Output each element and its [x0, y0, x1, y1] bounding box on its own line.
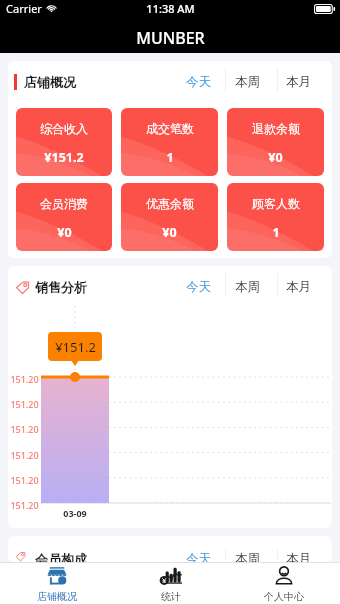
staticText: 11:38 AM [146, 1, 195, 16]
button[interactable]: 综合收入 [16, 108, 112, 176]
staticText: 本周 [235, 551, 260, 562]
staticText: 退款余额 [252, 121, 300, 136]
button[interactable]: 本月 [273, 275, 324, 299]
staticText: 综合收入 [40, 121, 88, 136]
staticText: 1 [272, 224, 280, 241]
button[interactable]: 今天 [169, 551, 220, 562]
staticText: ¥151.2 [44, 149, 84, 166]
staticText: ¥0 [162, 224, 177, 241]
staticText: 本月 [286, 74, 311, 90]
staticText: 本月 [286, 279, 311, 295]
button[interactable]: 退款余额 [227, 108, 324, 176]
staticText: 本周 [235, 279, 260, 295]
staticText: 151.20 [10, 398, 39, 410]
staticText: 151.20 [10, 423, 39, 435]
staticText: MUNBER [136, 27, 205, 49]
button[interactable]: 本周 [221, 551, 272, 562]
button[interactable]: 本月 [273, 551, 324, 562]
button[interactable]: 今天 [169, 70, 220, 94]
staticText: 店铺概况 [37, 590, 77, 603]
other: 个人中心 [273, 565, 295, 587]
staticText: 成交笔数 [146, 121, 194, 136]
staticText: 151.20 [10, 449, 39, 461]
staticText: 151.20 [10, 373, 39, 385]
staticText: 统计 [161, 590, 181, 603]
button[interactable]: 个人中心 [227, 563, 340, 604]
staticText: ¥151.2 [55, 338, 96, 356]
staticText: ¥0 [268, 149, 283, 166]
staticText: 本周 [235, 74, 260, 90]
staticText: 今天 [186, 74, 211, 90]
staticText: 1 [166, 149, 174, 166]
button[interactable]: 会员消费 [16, 183, 112, 251]
button[interactable]: 优惠余额 [121, 183, 218, 251]
staticText: Carrier [6, 1, 42, 16]
staticText: 今天 [186, 279, 211, 295]
other: 店铺概况 [46, 565, 68, 587]
staticText: 顾客人数 [252, 196, 300, 211]
staticText: 本月 [286, 551, 311, 562]
staticText: 03-09 [63, 507, 87, 519]
button[interactable]: 顾客人数 [227, 183, 324, 251]
staticText: 店铺概况 [24, 74, 76, 90]
staticText: 151.20 [10, 474, 39, 486]
button[interactable]: 统计 [114, 563, 227, 604]
staticText: 销售分析 [35, 279, 87, 295]
staticText: 个人中心 [264, 590, 304, 603]
staticText: ¥0 [57, 224, 72, 241]
staticText: 会员消费 [40, 196, 88, 211]
button[interactable]: 本周 [221, 70, 272, 94]
button[interactable]: 今天 [169, 275, 220, 299]
button[interactable]: 店铺概况 [0, 563, 114, 604]
staticText: 会员构成 [35, 551, 87, 562]
other: 统计 [160, 565, 182, 587]
button[interactable]: 本周 [221, 275, 272, 299]
button[interactable]: 成交笔数 [121, 108, 218, 176]
staticText: 优惠余额 [146, 196, 194, 211]
button[interactable]: 本月 [273, 70, 324, 94]
staticText: 今天 [186, 551, 211, 562]
staticText: 151.20 [10, 499, 39, 511]
